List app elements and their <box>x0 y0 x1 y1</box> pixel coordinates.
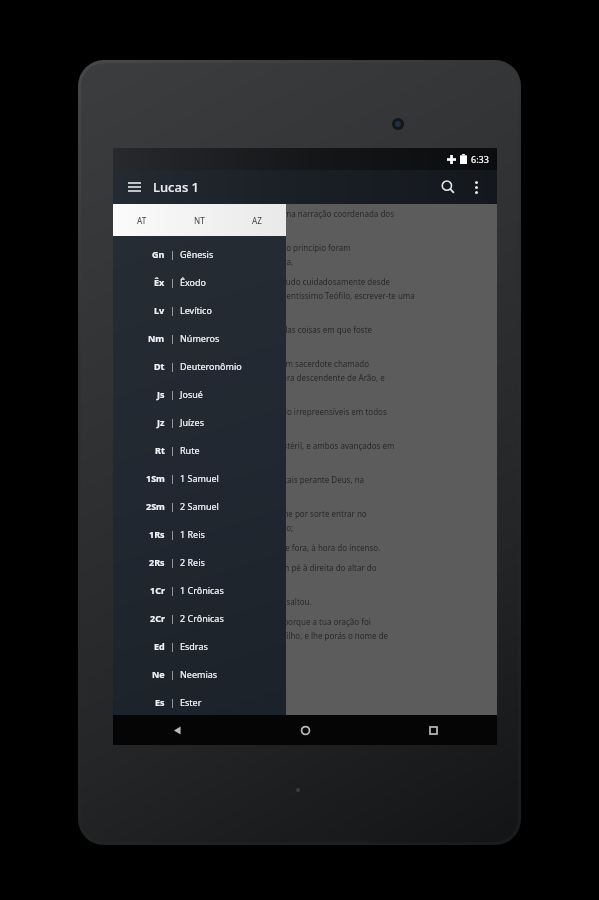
staticText: Esdras <box>180 640 208 652</box>
staticText: Dt <box>154 360 165 372</box>
staticText: | <box>170 304 175 316</box>
staticText: | <box>170 444 175 456</box>
button[interactable]: Dt <box>113 352 286 380</box>
staticText: 2Cr <box>150 612 165 624</box>
staticText: | <box>170 640 175 652</box>
staticText: Apareceu-lhe, então, um anjo do Senhor, … <box>123 562 377 573</box>
staticText: Ester <box>180 696 202 708</box>
staticText: 2Sm <box>146 500 165 512</box>
button[interactable]: Recent apps <box>369 715 497 745</box>
staticText: 1 Crônicas <box>180 584 224 596</box>
staticText: | <box>170 416 175 428</box>
staticText: 2Rs <box>149 556 165 568</box>
staticText: os mandamentos e preceitos do Senhor. <box>123 420 274 431</box>
button[interactable]: Jz <box>113 408 286 436</box>
button[interactable]: NT <box>170 204 228 236</box>
staticText: AT <box>137 215 147 226</box>
staticText: instruído. <box>123 338 159 349</box>
staticText: segundo o costume do sacerdócio, coube-l… <box>123 508 367 519</box>
staticText: Deuteronômio <box>180 360 242 372</box>
staticText: | <box>170 556 175 568</box>
staticText: Jz <box>157 416 165 428</box>
staticText: Es <box>155 696 165 708</box>
button[interactable]: Lv <box>113 296 286 324</box>
staticText: | <box>170 612 175 624</box>
staticText: testemunhas oculares e ministros da pala… <box>123 256 294 267</box>
staticText: Gênesis <box>180 248 214 260</box>
button[interactable]: More options <box>463 174 489 200</box>
staticText: Neemias <box>180 668 218 680</box>
staticText: 1Cr <box>150 584 165 596</box>
staticText: 1 Samuel <box>180 472 219 484</box>
staticText: 2 Crônicas <box>180 612 224 624</box>
staticText: | <box>170 276 175 288</box>
staticText: Lv <box>154 304 165 316</box>
staticText: Ora, estando ele a exercer funções sacer… <box>123 474 365 485</box>
staticText: Êxodo <box>180 276 207 288</box>
staticText: Mas não tinham filhos, porque Isabel era… <box>123 440 395 451</box>
staticText: também a mim, depois de haver investido … <box>123 276 391 287</box>
button[interactable]: Ne <box>113 660 286 688</box>
staticText: Ambos eram justos diante de Deus, andand… <box>123 406 387 417</box>
staticText: | <box>170 696 175 708</box>
staticText: Êx <box>154 276 165 288</box>
button[interactable]: Rt <box>113 436 286 464</box>
button[interactable]: 1Rs <box>113 520 286 548</box>
staticText: | <box>170 360 175 372</box>
button[interactable]: 1Sm <box>113 464 286 492</box>
staticText: | <box>170 528 175 540</box>
staticText: Ne <box>152 668 165 680</box>
button[interactable]: Open navigation drawer <box>121 174 147 200</box>
staticText: NT <box>194 215 205 226</box>
button[interactable]: 2Cr <box>113 604 286 632</box>
staticText: chamava-se Isabel. <box>123 386 195 397</box>
button[interactable]: Es <box>113 688 286 715</box>
button[interactable]: 2Rs <box>113 548 286 576</box>
button[interactable]: AZ <box>228 204 286 236</box>
staticText: Zacarias, da turma de Abias; e sua mulhe… <box>123 372 385 383</box>
staticText: 1Sm <box>146 472 165 484</box>
staticText: Vendo-o Zacarias, turbou-se, e o temor o… <box>123 596 312 607</box>
staticText: Rt <box>155 444 165 456</box>
staticText: | <box>170 332 175 344</box>
staticText: santuário do Senhor, para oferecer o inc… <box>123 522 294 533</box>
staticText: Js <box>157 388 165 400</box>
staticText: | <box>170 584 175 596</box>
staticText: Levítico <box>180 304 212 316</box>
staticText: Nm <box>148 332 165 344</box>
staticText: Gn <box>152 248 165 260</box>
staticText: e toda a multidão do povo orava da parte… <box>123 542 381 553</box>
staticText: ouvida, e Isabel, tua mulher, dará à luz… <box>123 630 389 641</box>
staticText: | <box>170 500 175 512</box>
staticText: o começo, pareceu-me conveniente, ó exce… <box>123 290 415 301</box>
button[interactable]: Gn <box>113 240 286 268</box>
staticText: | <box>170 388 175 400</box>
button[interactable]: Ed <box>113 632 286 660</box>
button[interactable]: Back <box>113 715 241 745</box>
staticText: para que conheças plenamente a verdade d… <box>123 324 373 335</box>
staticText: 6:33 <box>471 153 489 165</box>
staticText: | <box>170 472 175 484</box>
button[interactable]: Êx <box>113 268 286 296</box>
button[interactable]: Nm <box>113 324 286 352</box>
button[interactable]: 1Cr <box>113 576 286 604</box>
button[interactable]: AT <box>113 204 170 236</box>
staticText: Rute <box>180 444 200 456</box>
button[interactable]: Js <box>113 380 286 408</box>
staticText: Visto que muitos têm empreendido fazer u… <box>123 208 395 219</box>
button[interactable]: Home <box>241 715 369 745</box>
button[interactable]: 2Sm <box>113 492 286 520</box>
staticText: Mas o anjo lhe disse: Não temas, Zacaria… <box>123 616 371 627</box>
staticText: 1Rs <box>149 528 165 540</box>
staticText: 1 Reis <box>180 528 205 540</box>
staticText: Houve nos dias de Herodes, rei da Judéia… <box>123 358 370 369</box>
staticText: Josué <box>180 388 203 400</box>
button[interactable]: Search <box>433 172 463 202</box>
staticText: | <box>170 248 175 260</box>
staticText: AZ <box>252 215 262 226</box>
staticText: 2 Reis <box>180 556 205 568</box>
